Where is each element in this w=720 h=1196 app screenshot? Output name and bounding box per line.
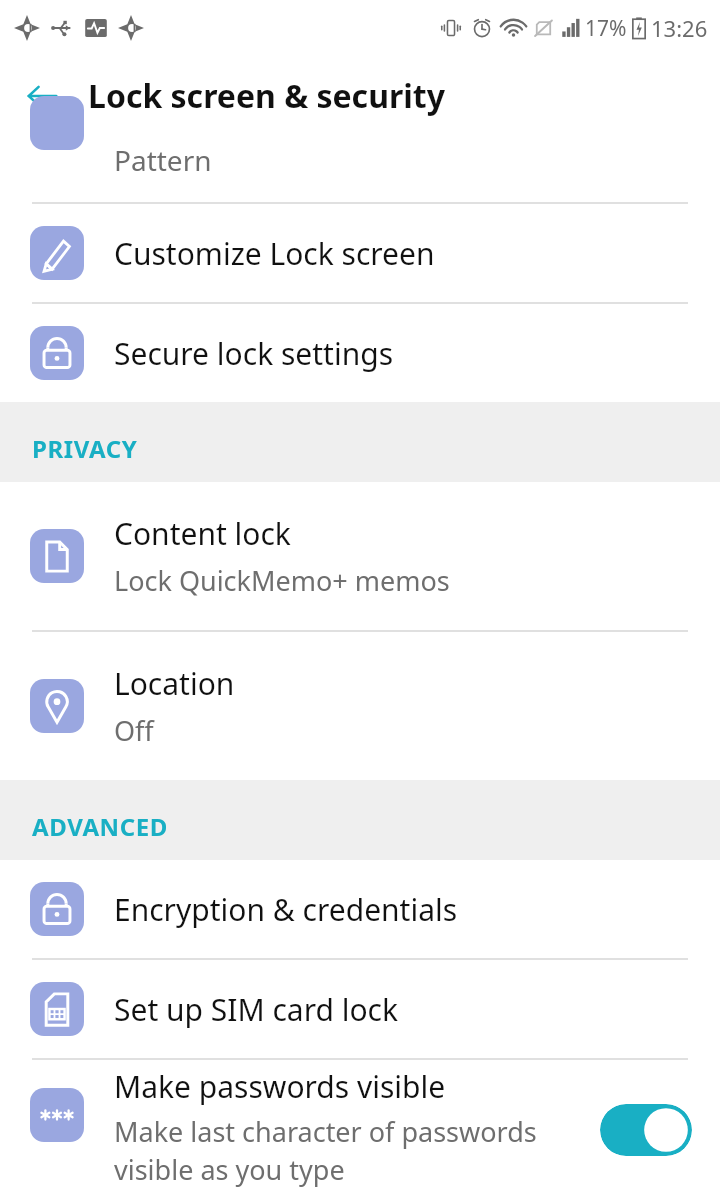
button[interactable]: Secure lock settings xyxy=(0,304,720,402)
staticText: Content lock xyxy=(114,513,291,554)
button[interactable]: Set up SIM card lock xyxy=(0,960,720,1058)
staticText: ADVANCED xyxy=(32,810,168,843)
staticText: Encryption & credentials xyxy=(114,889,458,930)
button[interactable]: Back xyxy=(16,70,68,122)
staticText: Make last character of passwords visible… xyxy=(114,1113,584,1188)
staticText: Set up SIM card lock xyxy=(114,989,399,1030)
staticText: Location xyxy=(114,663,235,704)
staticText: Secure lock settings xyxy=(114,333,393,374)
staticText: Lock QuickMemo+ memos xyxy=(114,562,450,599)
button[interactable]: Location xyxy=(0,632,720,780)
staticText: Make passwords visible xyxy=(114,1066,446,1107)
button[interactable]: Make passwords visible toggle xyxy=(600,1104,692,1156)
staticText: Lock screen & security xyxy=(88,74,445,118)
staticText: Customize Lock screen xyxy=(114,233,435,274)
staticText: 17% xyxy=(585,14,627,43)
button[interactable]: Content lock xyxy=(0,482,720,630)
staticText: PRIVACY xyxy=(32,432,138,465)
staticText: 13:26 xyxy=(651,13,708,43)
staticText: Pattern xyxy=(114,141,212,179)
staticText: Off xyxy=(114,712,154,749)
button[interactable]: Customize Lock screen xyxy=(0,204,720,302)
button[interactable]: Encryption & credentials xyxy=(0,860,720,958)
